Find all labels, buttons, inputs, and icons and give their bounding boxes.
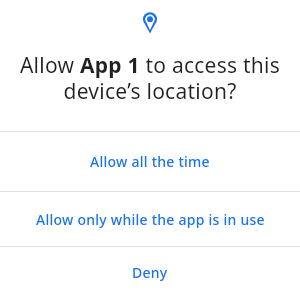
button[interactable]: Deny: [0, 247, 300, 298]
staticText: Allow only while the app is in use: [36, 210, 265, 229]
button[interactable]: Allow all the time: [0, 132, 300, 191]
staticText: Deny: [132, 263, 168, 282]
button[interactable]: Allow only while the app is in use: [0, 192, 300, 246]
staticText: Allow all the time: [90, 152, 210, 171]
staticText: Allow App 1 to access this device’s loca…: [12, 51, 288, 105]
